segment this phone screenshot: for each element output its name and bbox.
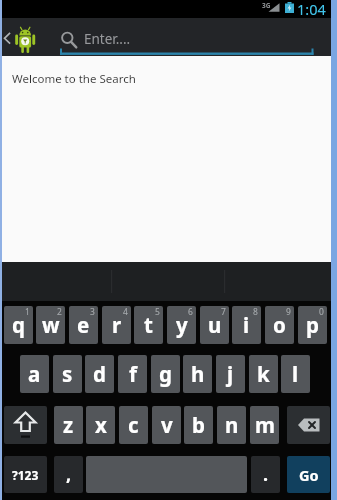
staticText: 6 [188, 306, 193, 318]
staticText: 1:04 [297, 0, 326, 17]
staticText: e [77, 311, 90, 339]
button[interactable]: i [232, 306, 261, 344]
staticText: d [93, 360, 106, 388]
staticText: b [192, 411, 205, 439]
button[interactable] [4, 406, 47, 444]
button[interactable]: q [4, 306, 33, 344]
button[interactable]: r [102, 306, 131, 344]
staticText: ?123 [12, 467, 39, 483]
button[interactable]: , [54, 456, 83, 493]
button[interactable]: u [200, 306, 229, 344]
staticText: f [129, 360, 137, 388]
button[interactable]: h [183, 355, 212, 393]
staticText: k [257, 360, 270, 388]
button[interactable]: . [251, 456, 280, 493]
staticText: m [255, 411, 275, 439]
button[interactable]: e [69, 306, 98, 344]
button[interactable]: o [265, 306, 294, 344]
staticText: 7 [221, 306, 226, 318]
button[interactable]: g [151, 355, 180, 393]
staticText: a [28, 360, 41, 388]
staticText: j [227, 360, 234, 388]
staticText: 5 [155, 306, 160, 318]
button[interactable]: m [250, 406, 279, 444]
staticText: , [66, 462, 72, 487]
button[interactable]: t [134, 306, 163, 344]
staticText: Welcome to the Search [12, 71, 136, 87]
staticText: g [159, 360, 172, 388]
button[interactable]: Go [287, 456, 330, 493]
staticText: 3 [90, 306, 95, 318]
button[interactable]: c [119, 406, 148, 444]
staticText: . [263, 462, 269, 487]
staticText: w [42, 311, 60, 339]
staticText: h [191, 360, 205, 388]
staticText: i [243, 311, 250, 339]
button[interactable]: j [216, 355, 245, 393]
staticText: 9 [286, 306, 291, 318]
button[interactable]: w [36, 306, 65, 344]
button[interactable]: b [184, 406, 213, 444]
button[interactable]: k [249, 355, 278, 393]
staticText: 1 [25, 306, 30, 318]
button[interactable]: y [167, 306, 196, 344]
button[interactable]: x [86, 406, 115, 444]
button[interactable]: d [85, 355, 114, 393]
staticText: x [95, 411, 107, 439]
button[interactable]: ?123 [4, 456, 47, 493]
button[interactable]: v [152, 406, 181, 444]
staticText: Enter.... [84, 30, 131, 48]
staticText: q [12, 311, 25, 339]
button[interactable]: l [281, 355, 310, 393]
staticText: 3G [262, 1, 271, 10]
button[interactable]: z [54, 406, 83, 444]
button[interactable]: p [298, 306, 327, 344]
staticText: o [273, 311, 286, 339]
staticText: p [306, 311, 319, 339]
button[interactable]: Enter.... [0, 18, 337, 56]
button[interactable]: s [53, 355, 82, 393]
staticText: c [128, 411, 139, 439]
staticText: t [144, 311, 153, 339]
staticText: z [63, 411, 74, 439]
staticText: 4 [123, 306, 128, 318]
staticText: n [225, 411, 239, 439]
staticText: l [292, 360, 299, 388]
staticText: 0 [319, 306, 324, 318]
button[interactable]: f [118, 355, 147, 393]
button[interactable]: n [217, 406, 246, 444]
staticText: s [62, 360, 73, 388]
staticText: v [161, 411, 173, 439]
staticText: r [112, 311, 122, 339]
staticText: u [208, 311, 222, 339]
button[interactable]: a [20, 355, 49, 393]
staticText: 8 [253, 306, 258, 318]
button[interactable] [287, 406, 330, 444]
staticText: Go [299, 465, 319, 485]
staticText: 2 [57, 306, 62, 318]
staticText: y [176, 311, 188, 339]
